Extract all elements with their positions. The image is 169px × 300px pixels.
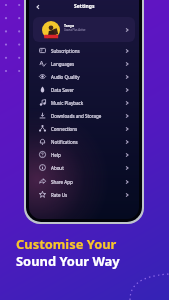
staticText: Help (51, 152, 61, 158)
button[interactable]: About (29, 161, 139, 174)
button[interactable]: Music Playback (29, 96, 139, 109)
staticText: Subscriptions (51, 48, 80, 54)
button[interactable]: Audio Quality (29, 70, 139, 83)
staticText: Languages (51, 61, 75, 67)
staticText: Connections (51, 126, 78, 132)
button[interactable]: Languages (29, 57, 139, 70)
button[interactable]: Downloads and Storage (29, 109, 139, 122)
staticText: Settings (74, 3, 95, 10)
staticText: Tanya (64, 23, 75, 28)
staticText: Rate Us (51, 192, 68, 198)
staticText: Data Saver (51, 87, 74, 93)
button[interactable]: Connections (29, 122, 139, 135)
button[interactable]: Subscriptions (29, 44, 139, 57)
staticText: Notifications (51, 139, 78, 145)
button[interactable]: Tanya (33, 17, 135, 42)
button[interactable]: Rate Us (29, 188, 139, 201)
staticText: Sound Your Way (16, 252, 120, 270)
staticText: Customise Your (16, 235, 117, 253)
button[interactable]: Back (29, 1, 47, 12)
staticText: Gaana Plus Active (64, 28, 86, 32)
staticText: Downloads and Storage (51, 113, 102, 119)
staticText: Audio Quality (51, 74, 80, 80)
staticText: Share App (51, 179, 73, 185)
button[interactable]: Help (29, 148, 139, 161)
button[interactable]: Data Saver (29, 83, 139, 96)
button[interactable]: Notifications (29, 135, 139, 148)
button[interactable]: Share App (29, 175, 139, 188)
staticText: About (51, 165, 64, 171)
staticText: Music Playback (51, 100, 84, 106)
